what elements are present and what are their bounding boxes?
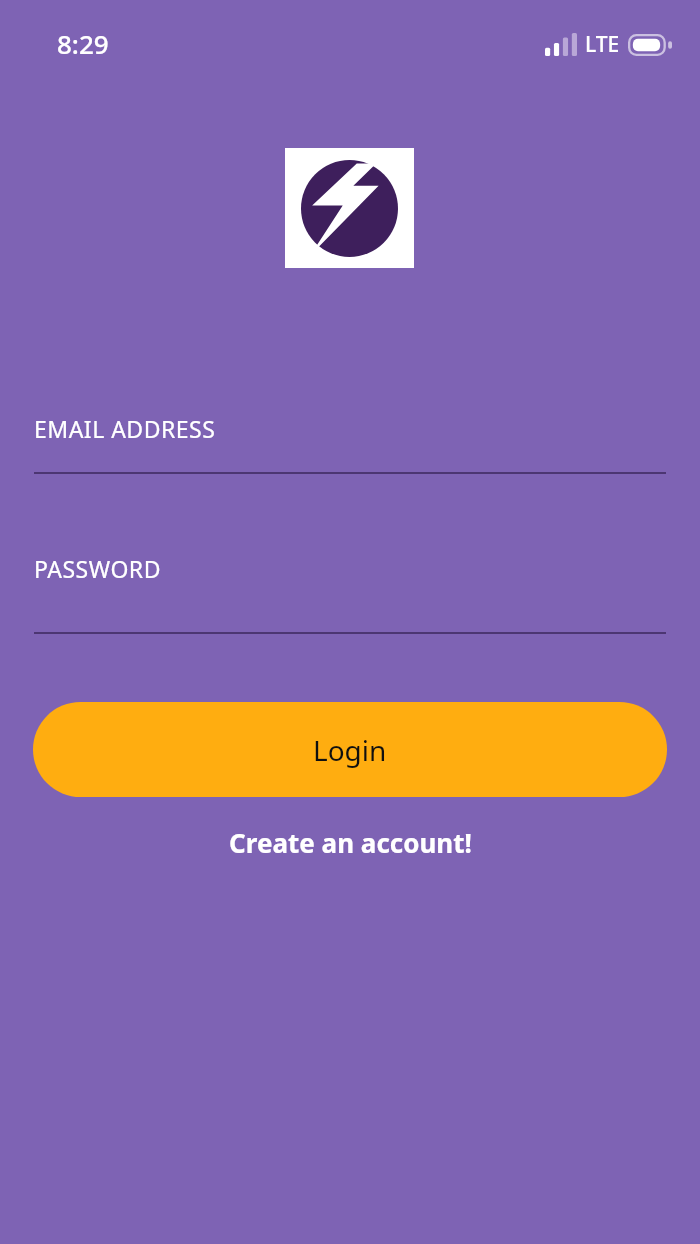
staticText: PASSWORD (34, 553, 161, 584)
button[interactable]: Create an account! (0, 820, 700, 865)
other: Battery level (628, 34, 672, 56)
button[interactable]: EMAIL ADDRESS (34, 413, 666, 474)
staticText: Login (313, 731, 387, 769)
button[interactable]: PASSWORD (34, 553, 666, 634)
button[interactable]: Login (33, 702, 667, 797)
staticText: EMAIL ADDRESS (34, 413, 216, 444)
staticText: 8:29 (57, 26, 109, 61)
staticText: LTE (585, 30, 620, 59)
staticText: Create an account! (229, 825, 472, 860)
other: Cellular signal strength (545, 33, 577, 56)
